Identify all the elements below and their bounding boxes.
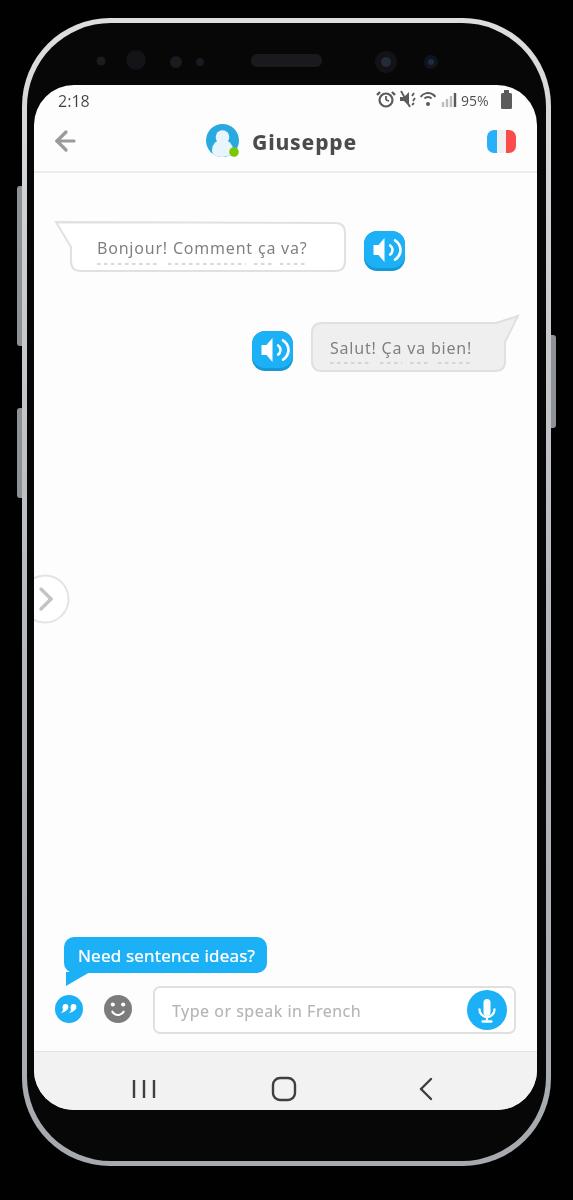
button[interactable] — [46, 125, 86, 161]
staticText: 2:18 — [58, 90, 90, 112]
button[interactable] — [467, 990, 507, 1030]
button[interactable] — [406, 1077, 446, 1101]
staticText: Type or speak in French — [172, 1000, 362, 1022]
button[interactable] — [264, 1077, 304, 1101]
button[interactable] — [64, 937, 267, 973]
staticText: Need sentence ideas? — [78, 944, 256, 967]
button[interactable] — [34, 573, 71, 625]
button[interactable] — [55, 995, 83, 1023]
button[interactable] — [364, 231, 405, 271]
button[interactable] — [104, 995, 132, 1023]
staticText: Salut! Ça va bien! — [330, 337, 473, 359]
button[interactable] — [124, 1077, 164, 1101]
staticText: 95% — [461, 91, 489, 110]
button[interactable] — [153, 986, 516, 1034]
staticText: Bonjour! Comment ça va? — [97, 237, 308, 259]
staticText: Giuseppe — [252, 128, 358, 157]
button[interactable] — [252, 331, 293, 371]
button[interactable] — [487, 130, 516, 153]
